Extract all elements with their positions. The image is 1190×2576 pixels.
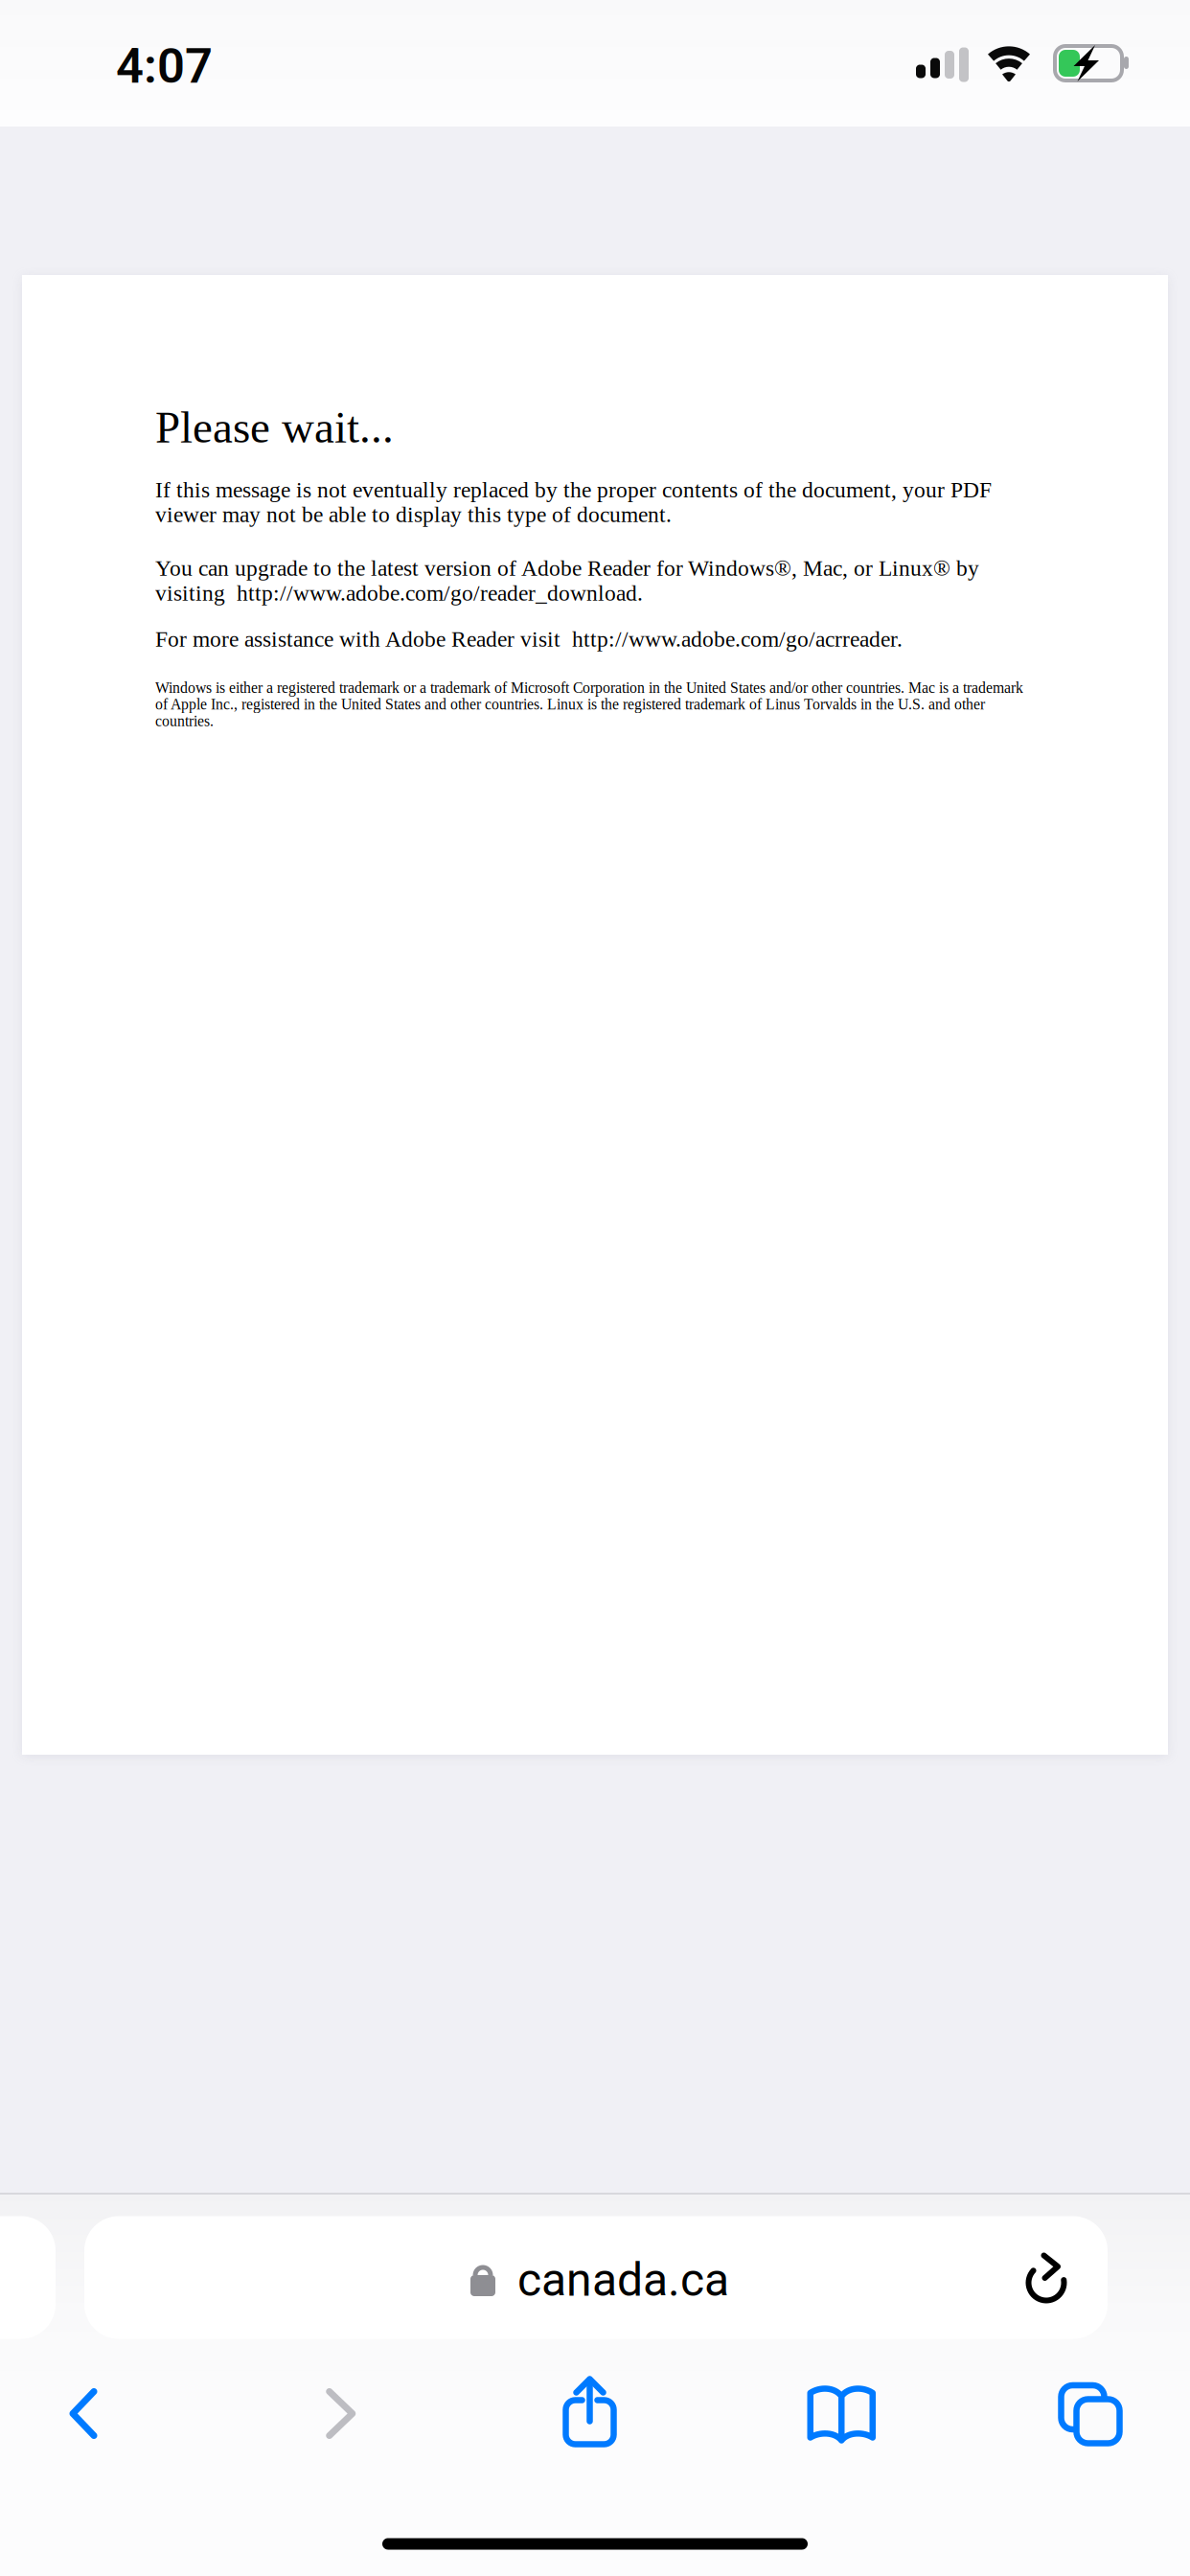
staticText: canada.ca [517, 2253, 729, 2307]
staticText: You can upgrade to the latest version of… [155, 556, 979, 606]
staticText: If this message is not eventually replac… [155, 477, 992, 527]
button[interactable]: Back [11, 2361, 155, 2466]
button[interactable]: Share [517, 2361, 661, 2466]
staticText: For more assistance with Adobe Reader vi… [155, 627, 903, 652]
button[interactable]: Reload [1016, 2252, 1067, 2303]
staticText: Windows is either a registered trademark… [155, 679, 1023, 729]
staticText: Please wait... [155, 402, 394, 452]
button[interactable]: Bookmarks [770, 2361, 913, 2466]
button[interactable]: Forward [264, 2361, 408, 2466]
staticText: 4:07 [116, 38, 213, 95]
button[interactable]: Tabs [1022, 2361, 1166, 2466]
button[interactable]: canada.ca [84, 2216, 1108, 2339]
